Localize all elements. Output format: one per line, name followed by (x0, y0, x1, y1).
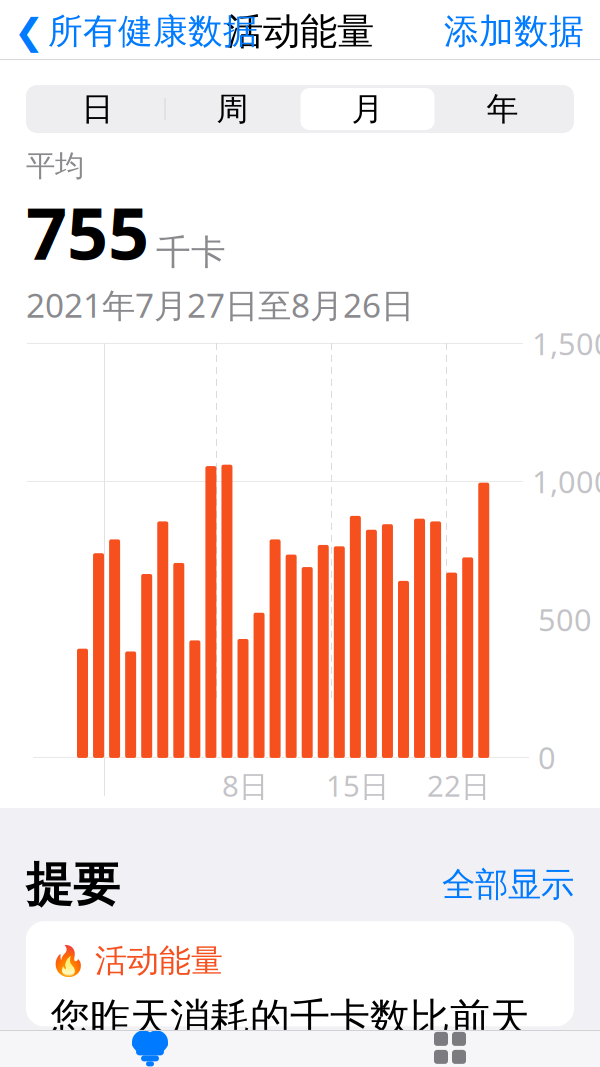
staticText: 1,000 (532, 461, 600, 502)
staticText: 千卡 (156, 231, 226, 274)
staticText: ❮ (14, 11, 44, 52)
button[interactable]: 全部显示 (430, 858, 574, 911)
staticText: 22日 (427, 766, 490, 805)
staticText: 🔥 (50, 944, 87, 978)
button[interactable]: 月 (300, 88, 434, 130)
staticText: 周 (216, 89, 248, 129)
staticText: 年 (486, 89, 518, 129)
staticText: 您昨天消耗的千卡数比前天多。 (50, 994, 530, 1067)
button[interactable]: ❮ (0, 0, 266, 63)
button[interactable]: 浏览 (300, 1030, 600, 1067)
staticText: 日 (81, 89, 113, 129)
staticText: 0 (538, 737, 556, 778)
staticText: 提要 (26, 856, 120, 913)
staticText: 2021年7月27日至8月26日 (26, 283, 414, 327)
button[interactable]: 周 (165, 88, 299, 130)
staticText: 500 (538, 599, 592, 640)
button[interactable]: 🔥 (26, 921, 574, 1026)
staticText: 全部显示 (442, 864, 574, 905)
button[interactable]: 年 (435, 88, 569, 130)
button[interactable]: 日 (30, 88, 164, 130)
button[interactable]: 摘要 (0, 1030, 300, 1067)
staticText: 755 (26, 184, 149, 280)
staticText: 添加数据 (444, 10, 584, 53)
staticText: 15日 (326, 766, 389, 805)
staticText: 8日 (222, 766, 268, 805)
staticText: 月 (351, 89, 383, 129)
staticText: 活动能量 (95, 941, 223, 981)
staticText: 1,500 (532, 323, 600, 364)
staticText: 平均 (26, 148, 84, 184)
staticText: 活动能量 (226, 9, 374, 54)
staticText: 所有健康数据 (48, 10, 258, 53)
button[interactable]: 添加数据 (436, 0, 600, 63)
